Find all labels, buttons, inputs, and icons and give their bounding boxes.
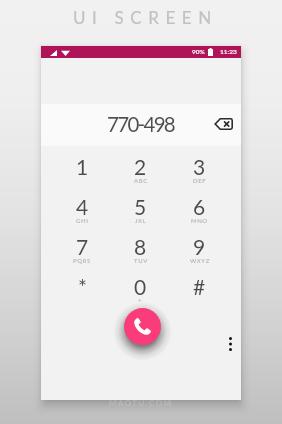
button[interactable]: More options <box>220 330 241 358</box>
staticText: TUV <box>134 257 148 264</box>
staticText: 9 <box>193 234 206 259</box>
staticText: DEF <box>193 177 207 184</box>
staticText: 3 <box>193 154 206 179</box>
staticText: JKL <box>135 217 147 224</box>
button[interactable]: 3 <box>170 152 229 192</box>
button[interactable]: # <box>170 272 229 312</box>
staticText: 0 <box>134 274 147 299</box>
button[interactable]: 4 <box>53 192 111 232</box>
staticText: 11:23 <box>220 48 237 56</box>
staticText: GHI <box>76 217 89 224</box>
staticText: WXYZ <box>190 257 210 264</box>
staticText: ABC <box>134 177 148 184</box>
staticText: 2 <box>134 154 147 179</box>
button[interactable]: 9 <box>170 232 229 272</box>
button[interactable]: 2 <box>111 152 170 192</box>
staticText: 1 <box>76 154 89 179</box>
staticText: PQRS <box>73 257 91 264</box>
staticText: 8 <box>134 234 147 259</box>
staticText: MAOTU.COM <box>109 398 173 408</box>
button[interactable]: Backspace <box>210 111 236 137</box>
staticText: 770-498 <box>107 112 175 137</box>
button[interactable]: 7 <box>53 232 111 272</box>
staticText: + <box>138 297 143 304</box>
button[interactable]: 5 <box>111 192 170 232</box>
button[interactable]: 0 <box>111 272 170 312</box>
staticText: 4 <box>76 194 89 219</box>
staticText: 5 <box>134 194 147 219</box>
staticText: MNO <box>191 217 208 224</box>
button[interactable]: Call <box>124 308 161 345</box>
button[interactable]: 1 <box>53 152 111 192</box>
button[interactable]: 6 <box>170 192 229 232</box>
staticText: 90% <box>192 48 205 56</box>
staticText: UI SCREEN <box>73 7 218 27</box>
button[interactable]: * <box>53 272 111 312</box>
staticText: 7 <box>76 234 89 259</box>
staticText: * <box>78 274 87 299</box>
button[interactable]: 8 <box>111 232 170 272</box>
staticText: # <box>193 274 206 299</box>
staticText: 6 <box>193 194 206 219</box>
